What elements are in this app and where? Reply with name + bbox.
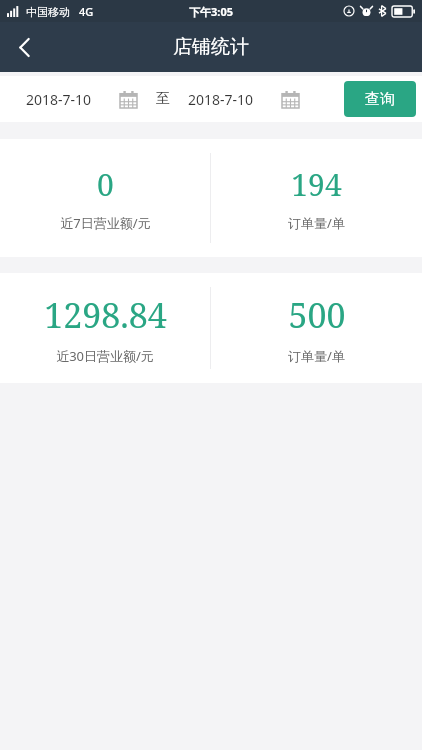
button[interactable]: 2018-7-10 [26, 90, 92, 109]
button[interactable]: Pick start date [116, 87, 140, 111]
staticText: 订单量/单 [288, 214, 345, 232]
button[interactable]: Back [0, 23, 48, 71]
staticText: 近7日营业额/元 [60, 214, 151, 232]
staticText: 至 [156, 90, 170, 108]
button[interactable]: 0 [0, 139, 210, 257]
button[interactable]: 500 [211, 273, 422, 383]
staticText: 下午3:05 [189, 4, 233, 19]
staticText: 订单量/单 [288, 347, 345, 365]
staticText: 194 [291, 164, 342, 205]
staticText: 0 [97, 164, 114, 205]
button[interactable]: 1298.84 [0, 273, 210, 383]
button[interactable]: Pick end date [278, 87, 302, 111]
staticText: 中国移动 [26, 5, 70, 19]
staticText: 500 [288, 292, 346, 338]
staticText: 近30日营业额/元 [56, 347, 154, 365]
staticText: 4G [79, 4, 94, 19]
button[interactable]: 2018-7-10 [188, 90, 254, 109]
staticText: 查询 [365, 90, 395, 109]
button[interactable]: 194 [211, 139, 422, 257]
staticText: 1298.84 [44, 292, 167, 338]
button[interactable]: 查询 [344, 81, 416, 117]
staticText: 店铺统计 [173, 35, 249, 59]
